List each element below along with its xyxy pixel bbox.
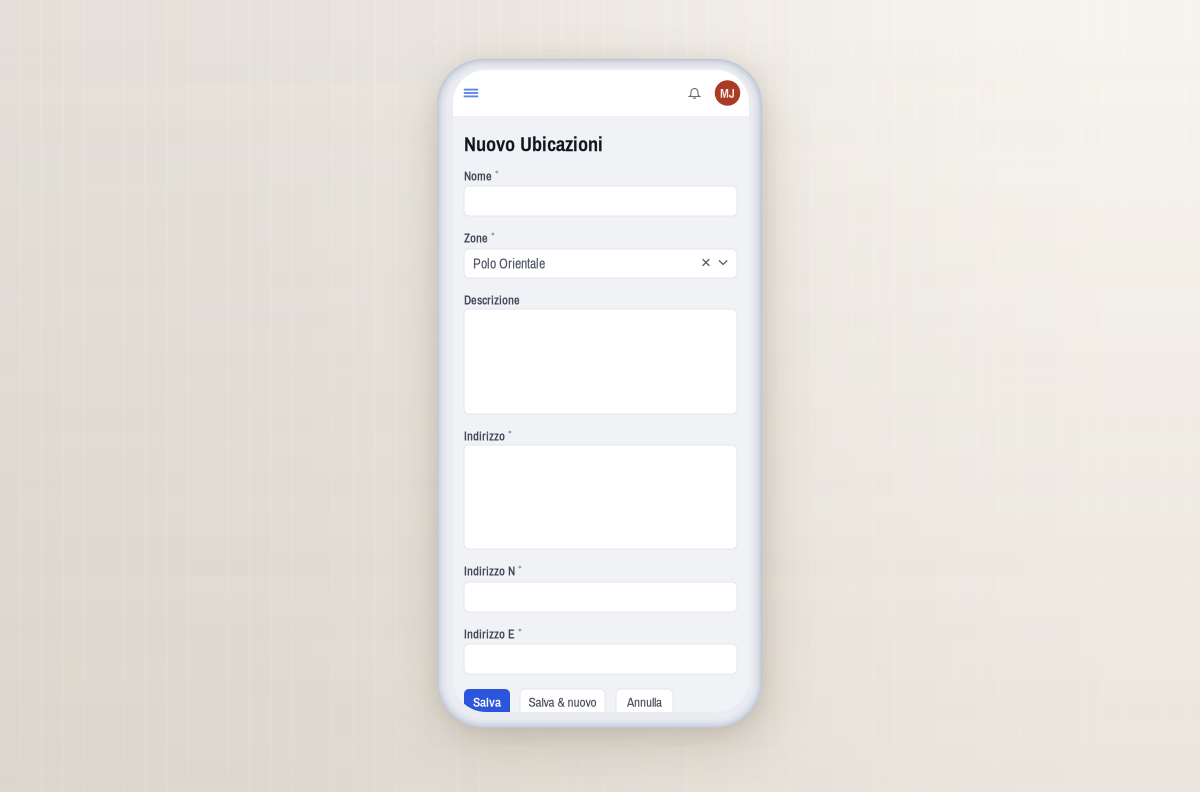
button[interactable]: Notifications: [678, 79, 710, 107]
staticText: Annulla: [627, 693, 662, 711]
button[interactable]: Account: [710, 76, 744, 110]
staticText: Nome: [464, 168, 492, 184]
staticText: Polo Orientale: [473, 254, 545, 273]
staticText: MJ: [720, 84, 735, 102]
staticText: *: [518, 624, 522, 640]
button[interactable]: Salva & nuovo: [520, 689, 605, 718]
staticText: *: [495, 166, 499, 182]
button[interactable]: Menu: [458, 80, 484, 106]
staticText: Nuovo Ubicazioni: [464, 130, 603, 158]
staticText: *: [491, 228, 495, 244]
staticText: Salva: [473, 693, 501, 711]
staticText: Indirizzo N: [464, 563, 515, 579]
staticText: *: [518, 561, 522, 577]
button[interactable]: Annulla: [616, 689, 673, 718]
staticText: *: [508, 426, 512, 442]
staticText: Zone: [464, 230, 488, 246]
staticText: Indirizzo: [464, 428, 505, 444]
staticText: Descrizione: [464, 292, 520, 308]
staticText: Indirizzo E: [464, 626, 515, 642]
staticText: Salva & nuovo: [528, 693, 596, 711]
button[interactable]: Salva: [464, 689, 510, 718]
